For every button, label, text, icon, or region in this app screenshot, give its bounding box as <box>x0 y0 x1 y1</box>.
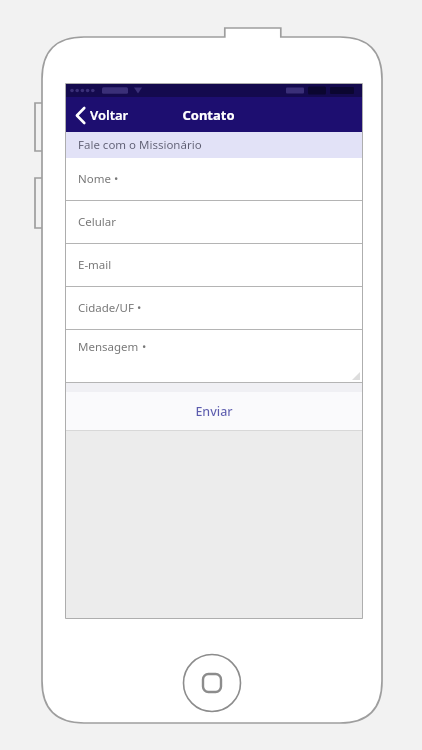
staticText: Voltar <box>90 106 129 124</box>
button[interactable]: Cidade/UF <box>66 287 362 329</box>
staticText: Contato <box>182 106 235 124</box>
button[interactable]: Nome <box>66 158 362 200</box>
staticText: Enviar <box>195 403 233 420</box>
staticText: Fale com o Missionário <box>78 137 202 153</box>
button[interactable]: Voltar <box>72 102 133 128</box>
button[interactable]: Mensagem <box>66 330 362 382</box>
staticText: Nome <box>78 171 111 187</box>
staticText: Celular <box>78 214 116 230</box>
staticText: Cidade/UF <box>78 300 134 316</box>
staticText: • <box>139 339 147 355</box>
staticText: • <box>111 171 119 187</box>
staticText: Mensagem <box>78 339 139 355</box>
button[interactable]: Enviar <box>66 392 362 430</box>
button[interactable]: Celular <box>66 201 362 243</box>
button[interactable]: E-mail <box>66 244 362 286</box>
staticText: E-mail <box>78 257 112 273</box>
button[interactable]: Home <box>182 653 242 713</box>
staticText: • <box>134 300 142 316</box>
button[interactable]: Fale com o Missionário <box>66 132 362 158</box>
